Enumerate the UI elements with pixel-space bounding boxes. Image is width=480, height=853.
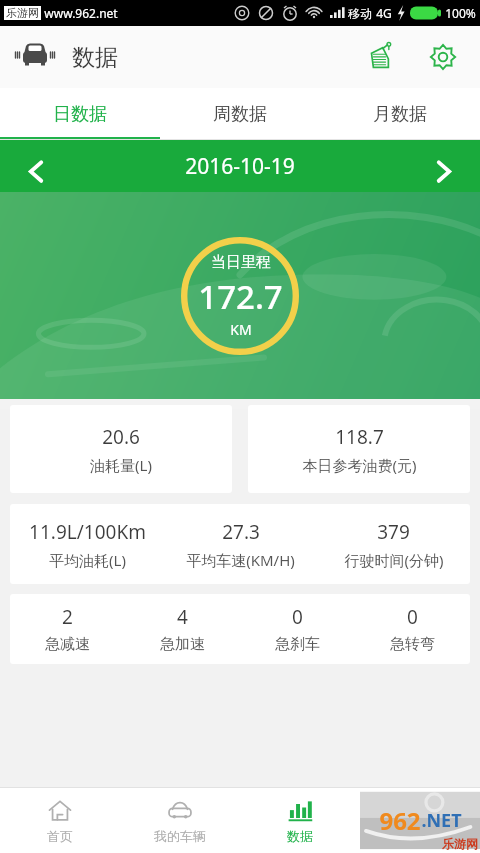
staticText: 行驶时间(分钟): [344, 550, 444, 570]
staticText: KM: [230, 320, 252, 339]
button[interactable]: 11.9L/100Km: [10, 504, 470, 584]
staticText: 数据: [72, 43, 118, 72]
staticText: 乐游网: [6, 6, 39, 20]
staticText: 27.3: [222, 519, 260, 545]
staticText: 20.6: [102, 424, 140, 450]
button[interactable]: My car: [12, 34, 58, 80]
staticText: 周数据: [213, 103, 267, 126]
staticText: 急减速: [45, 635, 90, 654]
staticText: 2: [62, 604, 73, 630]
staticText: 我的车辆: [154, 828, 206, 844]
staticText: 移动: [348, 6, 372, 21]
staticText: 172.7: [198, 274, 283, 319]
staticText: www.962.net: [44, 5, 118, 21]
staticText: 0: [407, 604, 418, 630]
staticText: 平均车速(KM/H): [186, 550, 295, 570]
button[interactable]: 首页: [0, 788, 120, 853]
button[interactable]: 2: [10, 594, 470, 664]
button[interactable]: More: [360, 788, 480, 853]
staticText: 日数据: [53, 103, 107, 126]
staticText: 乐游网: [442, 836, 478, 851]
button[interactable]: 我的车辆: [120, 788, 240, 853]
staticText: 油耗量(L): [90, 455, 152, 475]
staticText: 4G: [376, 5, 392, 21]
staticText: 4: [177, 604, 188, 630]
staticText: 数据: [287, 828, 313, 844]
staticText: 急刹车: [275, 635, 320, 654]
staticText: 962: [379, 804, 421, 837]
staticText: 急加速: [160, 635, 205, 654]
button[interactable]: Settings: [420, 34, 466, 80]
staticText: 11.9L/100Km: [29, 519, 146, 545]
staticText: 平均油耗(L): [49, 550, 126, 570]
button[interactable]: 118.7: [248, 405, 470, 493]
staticText: 当日里程: [211, 253, 271, 272]
button[interactable]: Refuel: [356, 34, 402, 80]
button[interactable]: 月数据: [320, 88, 480, 140]
staticText: 首页: [47, 828, 73, 844]
staticText: .NET: [421, 808, 462, 833]
staticText: 月数据: [373, 103, 427, 126]
staticText: 急转弯: [390, 635, 435, 654]
staticText: 100%: [445, 5, 476, 21]
button[interactable]: Next day: [418, 140, 470, 192]
button[interactable]: 20.6: [10, 405, 232, 493]
staticText: 0: [292, 604, 303, 630]
button[interactable]: 数据: [240, 788, 360, 853]
button[interactable]: Previous day: [10, 140, 62, 192]
staticText: 2016-10-19: [185, 152, 295, 181]
staticText: 118.7: [335, 424, 384, 450]
button[interactable]: 日数据: [0, 88, 160, 140]
staticText: 379: [377, 519, 410, 545]
button[interactable]: 周数据: [160, 88, 320, 140]
staticText: 本日参考油费(元): [302, 455, 417, 475]
